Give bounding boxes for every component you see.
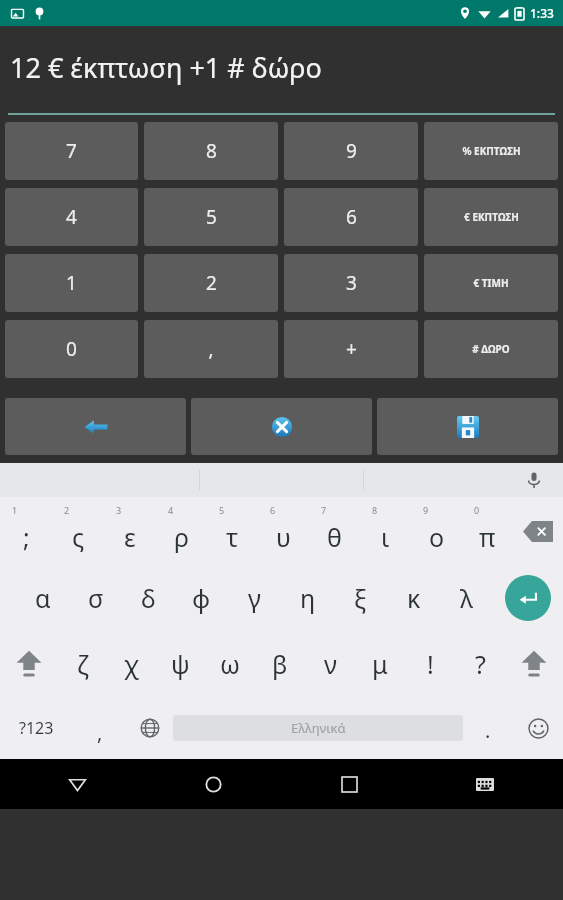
button[interactable]: Change language — [127, 697, 173, 759]
staticText: θ — [327, 520, 342, 554]
staticText: 6 — [346, 204, 357, 230]
button[interactable]: κ — [387, 565, 440, 631]
button[interactable]: ω — [205, 631, 255, 697]
staticText: . — [485, 717, 491, 744]
staticText: 5 — [219, 504, 225, 516]
staticText: β — [272, 647, 288, 681]
button[interactable]: % ΕΚΠΤΩΣΗ — [424, 122, 558, 180]
staticText: 2 — [206, 270, 217, 296]
button[interactable]: € ΤΙΜΗ — [424, 254, 558, 312]
staticText: α — [35, 581, 51, 615]
button[interactable]: # ΔΩΡΟ — [424, 320, 558, 378]
button[interactable]: β — [255, 631, 305, 697]
button[interactable]: σ — [69, 565, 122, 631]
button[interactable]: χ — [107, 631, 156, 697]
staticText: η — [300, 581, 316, 615]
staticText: 7 — [321, 504, 327, 516]
button[interactable]: Shift — [0, 631, 58, 697]
staticText: , — [208, 336, 214, 362]
staticText: ξ — [354, 581, 367, 615]
button[interactable]: μ — [355, 631, 405, 697]
button[interactable]: 2 — [144, 254, 278, 312]
button[interactable]: γ — [228, 565, 281, 631]
button[interactable]: € ΕΚΠΤΩΣΗ — [424, 188, 558, 246]
staticText: φ — [192, 581, 211, 615]
button[interactable]: ? — [455, 631, 505, 697]
staticText: 9 — [346, 138, 357, 164]
staticText: 1 — [12, 504, 18, 516]
button[interactable]: 1 — [0, 497, 52, 565]
button[interactable]: ! — [405, 631, 455, 697]
button[interactable]: Ελληνικά — [173, 715, 463, 741]
button[interactable]: ζ — [58, 631, 107, 697]
staticText: ο — [429, 520, 445, 554]
button[interactable]: η — [281, 565, 334, 631]
button[interactable]: Home — [189, 760, 237, 808]
button[interactable]: λ — [440, 565, 493, 631]
staticText: γ — [248, 581, 261, 615]
button[interactable]: 5 — [144, 188, 278, 246]
button[interactable]: 6 — [258, 497, 309, 565]
staticText: 7 — [66, 138, 77, 164]
button[interactable]: 0 — [5, 320, 138, 378]
button[interactable]: 2 — [52, 497, 104, 565]
staticText: 1 — [66, 270, 77, 296]
button[interactable]: Backspace — [513, 497, 563, 565]
button[interactable]: Save — [377, 398, 558, 455]
button[interactable]: 7 — [5, 122, 138, 180]
button[interactable]: 8 — [360, 497, 411, 565]
staticText: 1:33 — [530, 5, 554, 21]
staticText: λ — [460, 581, 473, 615]
staticText: ν — [324, 647, 337, 681]
staticText: 4 — [66, 204, 77, 230]
staticText: € ΤΙΜΗ — [473, 276, 509, 290]
staticText: δ — [141, 581, 156, 615]
button[interactable]: 9 — [411, 497, 462, 565]
button[interactable]: , — [144, 320, 278, 378]
staticText: 12 € έκπτωση +1 # δώρο — [10, 49, 322, 86]
button[interactable]: α — [16, 565, 69, 631]
button[interactable]: Back — [53, 760, 101, 808]
button[interactable]: 9 — [284, 122, 418, 180]
staticText: κ — [407, 581, 421, 615]
button[interactable]: 3 — [284, 254, 418, 312]
button[interactable]: , — [72, 697, 127, 759]
button[interactable]: 6 — [284, 188, 418, 246]
button[interactable]: 8 — [144, 122, 278, 180]
button[interactable]: Keyboard — [461, 760, 509, 808]
staticText: 2 — [64, 504, 70, 516]
button[interactable]: ?123 — [0, 697, 72, 759]
button[interactable]: δ — [122, 565, 175, 631]
staticText: € ΕΚΠΤΩΣΗ — [464, 210, 519, 224]
staticText: 8 — [372, 504, 378, 516]
button[interactable]: Shift — [505, 631, 563, 697]
button[interactable]: 1 — [5, 254, 138, 312]
staticText: ε — [124, 520, 136, 554]
button[interactable]: φ — [175, 565, 228, 631]
button[interactable]: 5 — [207, 497, 258, 565]
button[interactable]: 4 — [5, 188, 138, 246]
button[interactable]: ψ — [156, 631, 205, 697]
button[interactable]: Clear — [191, 398, 372, 455]
button[interactable]: 3 — [104, 497, 156, 565]
staticText: , — [97, 719, 103, 746]
staticText: 6 — [270, 504, 276, 516]
button[interactable]: Emoji — [513, 697, 563, 759]
button[interactable]: Recents — [325, 760, 373, 808]
button[interactable]: . — [463, 697, 513, 759]
button[interactable]: Back — [5, 398, 186, 455]
button[interactable]: ξ — [334, 565, 387, 631]
button[interactable]: 4 — [156, 497, 207, 565]
staticText: ω — [220, 647, 240, 681]
staticText: 4 — [168, 504, 174, 516]
button[interactable]: 0 — [462, 497, 513, 565]
button[interactable]: Enter — [493, 565, 563, 631]
staticText: 8 — [206, 138, 217, 164]
staticText: σ — [88, 581, 104, 615]
staticText: ς — [72, 520, 85, 554]
button[interactable]: ν — [305, 631, 355, 697]
button[interactable]: Voice input — [525, 471, 543, 489]
staticText: ρ — [174, 520, 190, 554]
button[interactable]: + — [284, 320, 418, 378]
button[interactable]: 7 — [309, 497, 360, 565]
